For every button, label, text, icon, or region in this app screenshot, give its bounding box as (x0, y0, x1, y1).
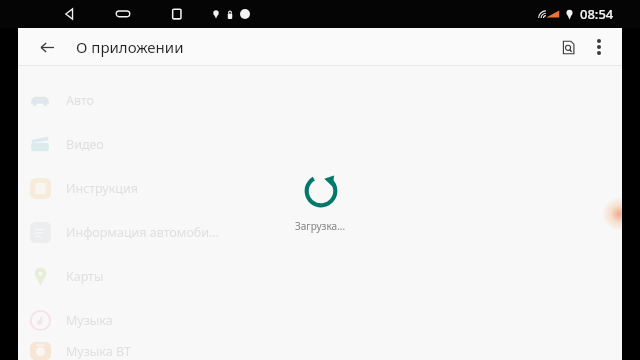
button[interactable]: More options (584, 32, 614, 62)
button[interactable]: Navigate up (30, 30, 64, 64)
button[interactable]: Информация автомобиля (18, 210, 223, 254)
staticText: Музыка (66, 312, 113, 329)
staticText: 08:54 (580, 5, 614, 23)
button[interactable]: Home (106, 3, 140, 25)
button[interactable]: Recent apps (160, 3, 194, 25)
button[interactable]: Search document (552, 31, 584, 63)
button[interactable]: Музыка BT (18, 342, 223, 360)
staticText: Карты (66, 268, 104, 285)
button[interactable]: Авто (18, 78, 223, 122)
staticText: Авто (66, 92, 95, 109)
staticText: Видео (66, 136, 104, 153)
staticText: О приложении (76, 37, 184, 57)
staticText: Загрузка... (295, 219, 346, 233)
button[interactable]: Музыка (18, 298, 223, 342)
button[interactable]: Инструкция (18, 166, 223, 210)
staticText: Информация автомобиля (66, 224, 223, 241)
button[interactable]: Видео (18, 122, 223, 166)
staticText: Музыка BT (66, 343, 131, 360)
button[interactable]: Back (52, 3, 86, 25)
staticText: Инструкция (66, 180, 138, 197)
button[interactable]: Карты (18, 254, 223, 298)
